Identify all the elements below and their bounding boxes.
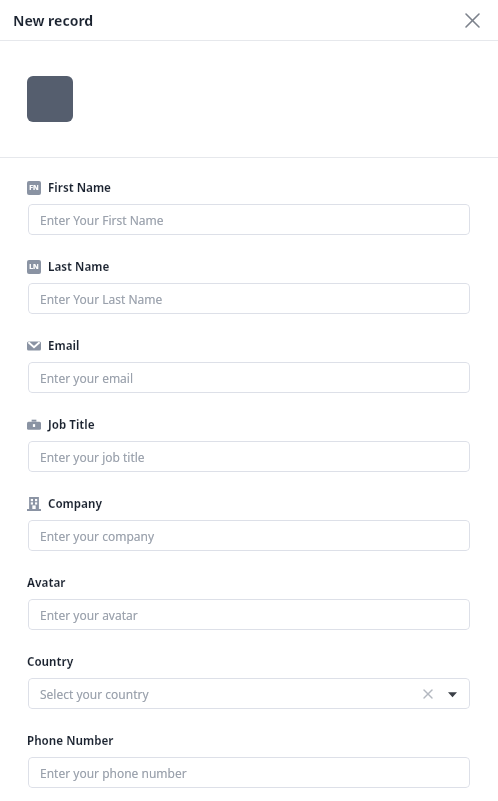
button[interactable]: Avatar image [27,76,73,122]
staticText: First Name [48,180,111,196]
staticText: Company [48,496,102,512]
staticText: Job Title [48,417,95,433]
button[interactable]: Enter your phone number [28,757,470,788]
button[interactable]: Open dropdown [444,686,460,702]
staticText: Enter your email [40,370,134,386]
button[interactable]: Enter Your First Name [28,204,470,235]
staticText: FN [29,183,39,193]
button[interactable]: Enter your job title [28,441,470,472]
button[interactable]: Enter your company [28,520,470,551]
staticText: Enter Your Last Name [40,291,163,307]
staticText: Enter your phone number [40,765,187,781]
staticText: Avatar [27,575,66,591]
staticText: Phone Number [27,733,114,749]
button[interactable]: Select your country [28,678,470,709]
staticText: LN [29,262,39,272]
staticText: Enter your job title [40,449,145,465]
staticText: Enter your company [40,528,155,544]
staticText: Email [48,338,80,354]
button[interactable]: Clear [420,686,436,702]
staticText: Last Name [48,259,110,275]
button[interactable]: Enter your avatar [28,599,470,630]
staticText: Country [27,654,74,670]
button[interactable]: Enter Your Last Name [28,283,470,314]
button[interactable]: Enter your email [28,362,470,393]
staticText: Enter Your First Name [40,212,164,228]
button[interactable]: Close [458,6,486,34]
staticText: Select your country [40,686,149,702]
staticText: Enter your avatar [40,607,138,623]
staticText: New record [13,11,94,30]
